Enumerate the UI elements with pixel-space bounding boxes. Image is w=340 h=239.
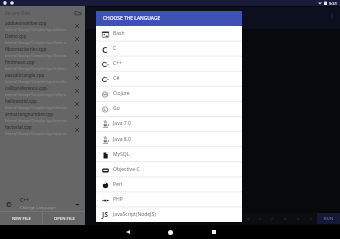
button[interactable]: addtwonumber.cpp xyxy=(0,19,85,32)
button[interactable]: Remove file xyxy=(72,73,81,82)
button[interactable]: armstrongnumber.cpp xyxy=(0,110,85,123)
staticText: pascaltriangle.cpp xyxy=(5,72,45,78)
staticText: Java 7.0 xyxy=(113,120,131,127)
button[interactable]: Remove file xyxy=(72,125,81,134)
button[interactable]: Go xyxy=(96,101,242,116)
staticText: callbyreference.cpp xyxy=(5,85,47,91)
button[interactable]: MySQL xyxy=(96,147,242,162)
button[interactable]: C++ xyxy=(96,56,242,71)
button[interactable]: NEW FILE xyxy=(0,212,42,226)
button[interactable]: Open folder xyxy=(74,9,81,16)
staticText: Recent Files xyxy=(5,10,31,16)
button[interactable]: Remove file xyxy=(72,112,81,121)
button[interactable]: Java 8.0 xyxy=(96,132,242,147)
staticText: C++ xyxy=(113,60,122,67)
staticText: NEW FILE xyxy=(12,216,31,222)
button[interactable]: Objective-C xyxy=(96,162,242,177)
button[interactable]: C xyxy=(96,41,242,56)
staticText: Java 8.0 xyxy=(113,136,131,143)
staticText: Go xyxy=(113,105,120,112)
staticText: Internal Storage/Compiler/cpp/findmean.c… xyxy=(5,66,69,70)
button[interactable]: Undo xyxy=(242,213,254,224)
staticText: C# xyxy=(113,75,120,82)
staticText: fibonnaciseries.cpp xyxy=(5,46,47,52)
staticText: Clojure xyxy=(113,90,130,97)
button[interactable]: C++ xyxy=(0,197,85,211)
button[interactable]: RUN xyxy=(317,213,340,224)
button[interactable]: Clojure xyxy=(96,86,242,101)
staticText: JS xyxy=(102,210,109,220)
staticText: JavaScript(NodeJS) xyxy=(113,211,156,218)
button[interactable]: CHOOSE THE LANGUAGE xyxy=(96,11,242,26)
button[interactable]: helloworld.cpp xyxy=(0,97,85,110)
button[interactable]: pascaltriangle.cpp xyxy=(0,71,85,84)
button[interactable]: Bash xyxy=(96,26,242,41)
staticText: Bash xyxy=(113,30,125,37)
button[interactable]: OPEN FILE xyxy=(43,212,85,226)
button[interactable]: Remove file xyxy=(72,34,81,43)
staticText: Internal Storage/Compiler/cpp/Demo.cpp xyxy=(5,40,69,44)
button[interactable]: JS xyxy=(96,207,242,222)
staticText: Internal Storage/Compiler/cpp/factorial.… xyxy=(5,131,69,135)
button[interactable]: Remove file xyxy=(72,60,81,69)
button[interactable]: Back xyxy=(106,225,149,239)
staticText: PHP xyxy=(113,196,123,203)
button[interactable]: Remove file xyxy=(72,86,81,95)
button[interactable]: Recents xyxy=(192,225,235,239)
button[interactable]: Perl xyxy=(96,177,242,192)
staticText: Perl xyxy=(113,181,123,188)
staticText: OPEN FILE xyxy=(54,216,75,222)
staticText: CHOOSE THE LANGUAGE xyxy=(103,15,161,22)
button[interactable]: Remove file xyxy=(72,99,81,108)
button[interactable]: fibonnaciseries.cpp xyxy=(0,45,85,58)
button[interactable]: findmean.cpp xyxy=(0,58,85,71)
staticText: C++ xyxy=(20,197,29,204)
staticText: factorial.cpp xyxy=(5,124,32,130)
button[interactable]: Home xyxy=(149,225,192,239)
button[interactable]: PHP xyxy=(96,192,242,207)
staticText: Internal Storage/Compiler/cpp/pascaltria… xyxy=(5,79,69,83)
staticText: Internal Storage/Compiler/cpp/armstrongn… xyxy=(5,118,69,122)
staticText: armstrongnumber.cpp xyxy=(5,111,53,117)
staticText: helloworld.cpp xyxy=(5,98,37,104)
button[interactable]: callbyreference.cpp xyxy=(0,84,85,97)
button[interactable]: Remove file xyxy=(72,21,81,30)
staticText: Change Language xyxy=(20,205,56,211)
staticText: Internal Storage/Compiler/cpp/helloworld… xyxy=(5,105,69,109)
button[interactable]: factorial.cpp xyxy=(0,123,85,136)
staticText: Internal Storage/Compiler/cpp/fibonnacis… xyxy=(5,53,69,57)
button[interactable]: Java 7.0 xyxy=(96,116,242,131)
staticText: Internal Storage/Compiler/cpp/callbyrefe… xyxy=(5,92,69,96)
staticText: Objective-C xyxy=(113,166,140,173)
staticText: 9:31 xyxy=(329,1,337,6)
button[interactable]: More options xyxy=(328,12,336,20)
staticText: C xyxy=(102,44,108,54)
button[interactable]: Demo.cpp xyxy=(0,32,85,45)
staticText: C xyxy=(113,45,117,52)
staticText: addtwonumber.cpp xyxy=(5,20,47,26)
button[interactable]: C# xyxy=(96,71,242,86)
staticText: findmean.cpp xyxy=(5,59,35,65)
staticText: MySQL xyxy=(113,151,130,158)
staticText: Internal Storage/Compiler/cpp/addtwonumb… xyxy=(5,27,69,31)
button[interactable]: Remove file xyxy=(72,47,81,56)
staticText: RUN xyxy=(324,216,334,222)
staticText: Demo.cpp xyxy=(5,33,27,39)
